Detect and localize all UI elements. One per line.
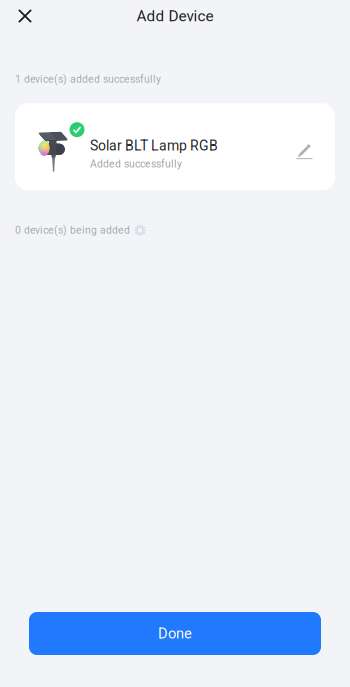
staticText: Done bbox=[158, 625, 192, 642]
staticText: Added successfully bbox=[90, 158, 182, 170]
button[interactable]: Solar BLT Lamp RGB bbox=[15, 103, 335, 190]
button[interactable]: Close bbox=[0, 0, 50, 32]
staticText: 0 device(s) being added bbox=[15, 224, 130, 236]
staticText: 1 device(s) added successfully bbox=[15, 73, 161, 85]
staticText: Add Device bbox=[136, 7, 213, 25]
button[interactable]: Done bbox=[29, 612, 321, 655]
staticText: Solar BLT Lamp RGB bbox=[90, 137, 218, 154]
